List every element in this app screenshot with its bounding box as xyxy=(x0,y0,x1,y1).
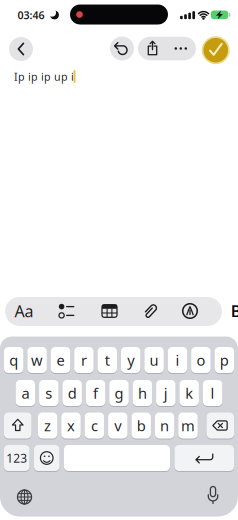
button[interactable]: w xyxy=(27,346,47,373)
button[interactable]: h xyxy=(133,379,152,406)
button[interactable]: e xyxy=(51,346,70,373)
button[interactable]: l xyxy=(203,379,222,406)
staticText xyxy=(114,443,120,473)
staticText: q xyxy=(9,350,18,370)
staticText: w xyxy=(31,350,43,370)
staticText: o xyxy=(196,350,205,370)
button[interactable]: f xyxy=(86,379,105,406)
staticText: p xyxy=(220,350,229,370)
button[interactable] xyxy=(110,36,134,60)
staticText: h xyxy=(138,383,147,403)
button[interactable]: r xyxy=(74,346,94,373)
button[interactable]: z xyxy=(38,412,57,439)
button[interactable]: g xyxy=(109,379,129,406)
button[interactable] xyxy=(206,412,234,439)
staticText: b xyxy=(137,416,146,435)
staticText: x xyxy=(67,416,75,435)
button[interactable]: u xyxy=(144,346,164,373)
button[interactable]: x xyxy=(61,412,81,439)
button[interactable]: p xyxy=(215,346,234,373)
button[interactable]: t xyxy=(98,346,117,373)
button[interactable] xyxy=(138,296,162,325)
staticText: c xyxy=(91,416,98,435)
button[interactable] xyxy=(64,444,170,471)
button[interactable]: k xyxy=(179,379,199,406)
staticText: n xyxy=(160,416,169,435)
staticText: 123 xyxy=(6,450,27,466)
button[interactable] xyxy=(97,296,121,325)
button[interactable]: v xyxy=(108,412,127,439)
staticText: s xyxy=(45,383,52,403)
button[interactable]: m xyxy=(178,412,198,439)
button[interactable] xyxy=(34,444,59,471)
button[interactable]: 123 xyxy=(4,444,29,471)
staticText: j xyxy=(164,383,168,403)
button[interactable]: d xyxy=(62,379,82,406)
button[interactable]: q xyxy=(4,346,23,373)
button[interactable] xyxy=(202,485,224,507)
staticText: v xyxy=(114,416,121,435)
button[interactable] xyxy=(178,296,202,325)
staticText: B xyxy=(231,300,238,322)
staticText: m xyxy=(181,416,195,435)
button[interactable] xyxy=(173,37,188,60)
staticText: y xyxy=(127,350,134,370)
button[interactable]: b xyxy=(131,412,151,439)
button[interactable] xyxy=(13,486,35,508)
button[interactable]: s xyxy=(39,379,58,406)
button[interactable]: B xyxy=(230,303,238,319)
staticText: l xyxy=(211,383,215,403)
button[interactable]: c xyxy=(85,412,104,439)
staticText: f xyxy=(93,383,98,403)
button[interactable]: y xyxy=(121,346,140,373)
staticText: r xyxy=(81,350,87,370)
button[interactable] xyxy=(174,444,234,471)
button[interactable]: o xyxy=(191,346,211,373)
staticText: Aa xyxy=(14,300,33,322)
staticText: t xyxy=(105,350,110,370)
button[interactable] xyxy=(54,296,78,325)
button[interactable]: n xyxy=(155,412,174,439)
staticText: u xyxy=(150,350,159,370)
button[interactable]: i xyxy=(168,346,187,373)
button[interactable]: j xyxy=(156,379,175,406)
staticText: Ip ip ip up i xyxy=(14,69,74,84)
staticText: a xyxy=(21,383,29,403)
staticText: i xyxy=(175,350,179,370)
staticText: g xyxy=(114,383,123,403)
button[interactable] xyxy=(9,37,33,61)
button[interactable] xyxy=(141,36,163,60)
button[interactable]: a xyxy=(16,379,35,406)
button[interactable] xyxy=(202,36,230,64)
staticText: z xyxy=(44,416,51,435)
button[interactable] xyxy=(4,412,31,439)
staticText: 03:46 xyxy=(17,8,44,22)
staticText: d xyxy=(68,383,77,403)
staticText: k xyxy=(185,383,193,403)
button[interactable]: Aa xyxy=(11,296,37,325)
staticText: e xyxy=(56,350,64,370)
